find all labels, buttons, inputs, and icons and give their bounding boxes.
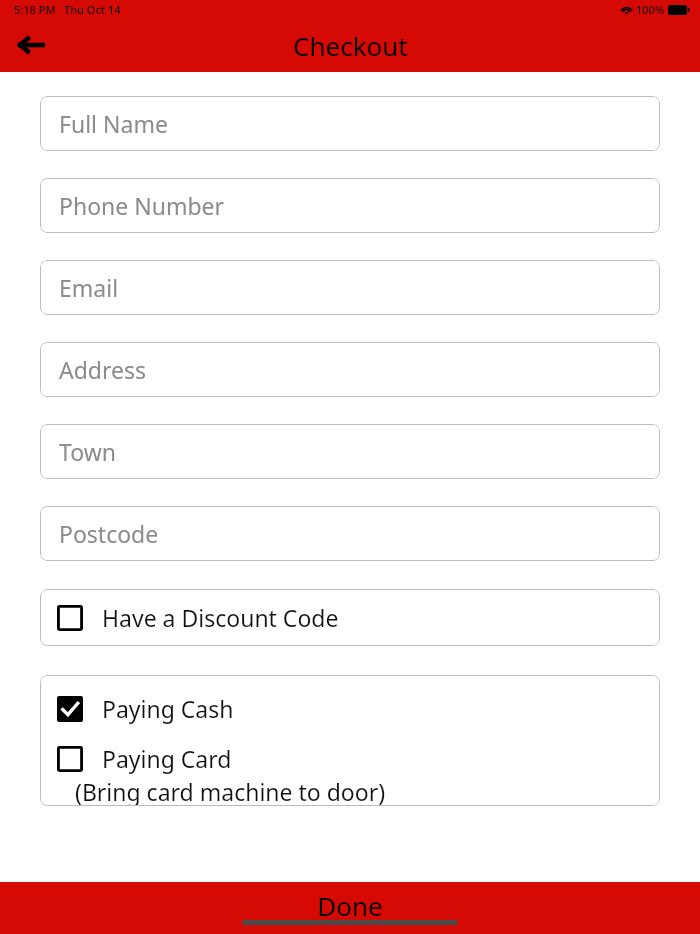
button[interactable]: Have a Discount Code xyxy=(40,589,660,646)
staticText: Have a Discount Code xyxy=(102,602,339,633)
staticText: (Bring card machine to door) xyxy=(75,776,386,806)
button[interactable]: Town xyxy=(40,424,660,479)
button[interactable]: Email xyxy=(40,260,660,315)
staticText: Address xyxy=(59,354,147,385)
button[interactable]: Paying Cash xyxy=(40,691,660,726)
staticText: Phone Number xyxy=(59,190,225,221)
button[interactable]: Phone Number xyxy=(40,178,660,233)
button[interactable]: Full Name xyxy=(40,96,660,151)
staticText: Paying Card xyxy=(102,743,232,774)
staticText: Full Name xyxy=(59,108,168,139)
button[interactable]: Paying Card xyxy=(40,743,660,806)
staticText: Email xyxy=(59,272,119,303)
staticText: 100% xyxy=(636,2,665,17)
button[interactable]: Postcode xyxy=(40,506,660,561)
button[interactable]: Address xyxy=(40,342,660,397)
staticText: Checkout xyxy=(293,28,408,63)
button[interactable]: Done xyxy=(0,882,700,934)
staticText: Postcode xyxy=(59,518,159,549)
staticText: Town xyxy=(59,436,116,467)
staticText: Thu Oct 14 xyxy=(64,2,121,17)
staticText: Done xyxy=(317,888,383,923)
button[interactable]: Back xyxy=(10,24,52,66)
staticText: Paying Cash xyxy=(102,693,234,724)
staticText: 5:18 PM xyxy=(14,2,56,17)
